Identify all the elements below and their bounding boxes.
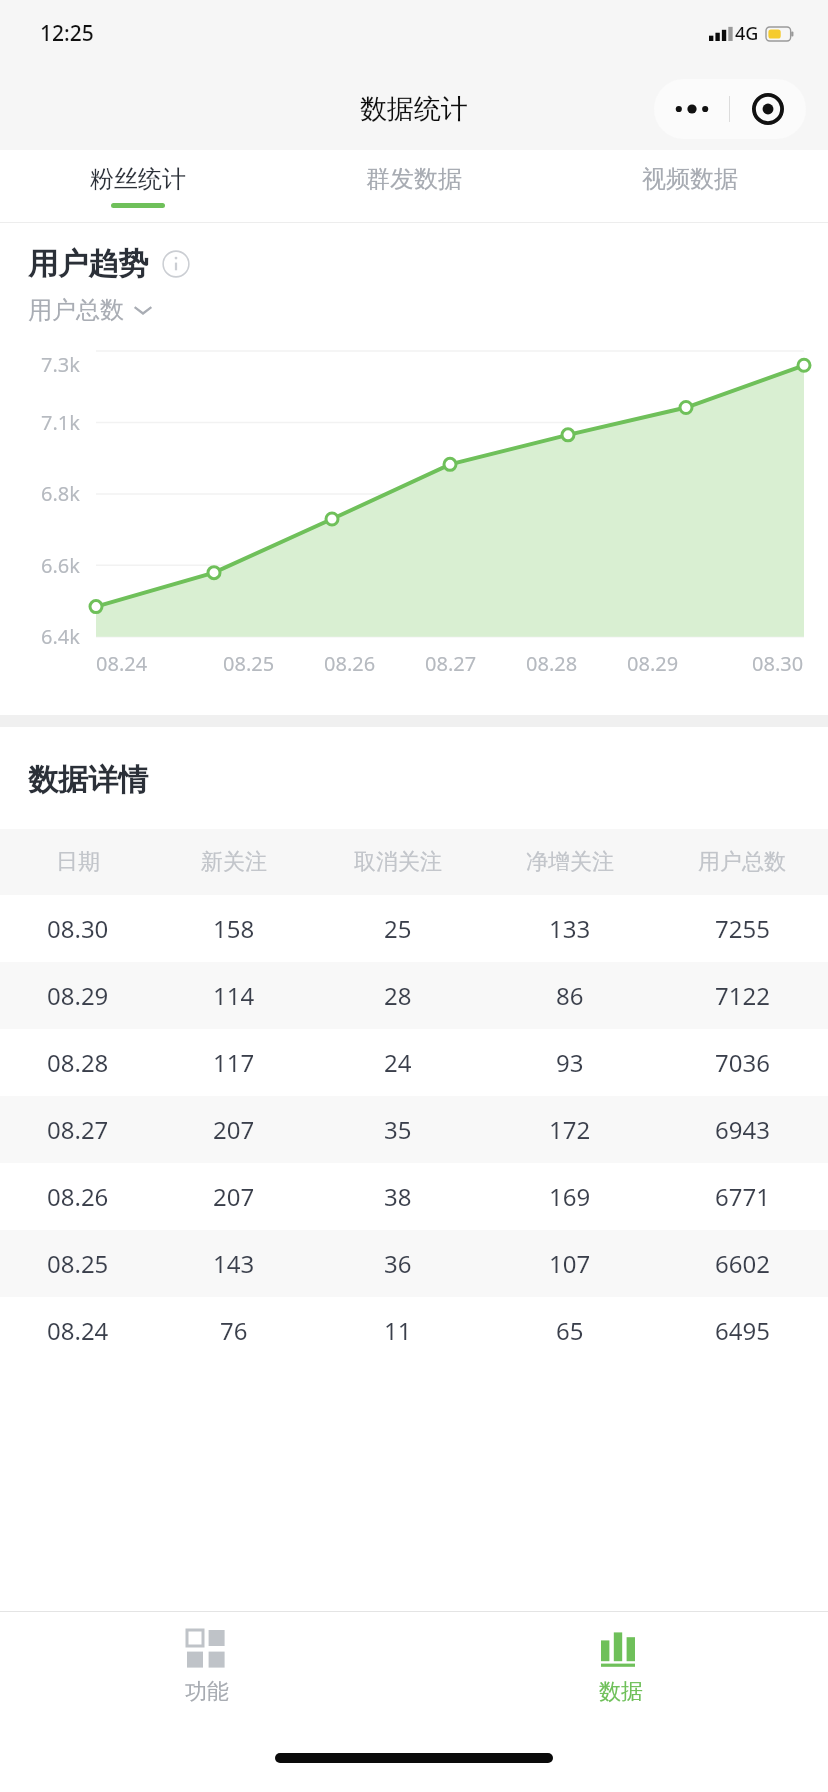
button[interactable]: More [654, 79, 729, 139]
staticText: 114 [213, 979, 255, 1012]
button[interactable]: 08.25 [0, 1230, 828, 1297]
staticText: 净增关注 [526, 848, 614, 876]
staticText: 158 [213, 912, 255, 945]
staticText: 7.3k [41, 351, 80, 378]
staticText: 08.27 [47, 1113, 109, 1146]
staticText: 143 [213, 1247, 255, 1280]
staticText: 取消关注 [354, 848, 442, 876]
staticText: 7.1k [41, 409, 80, 436]
staticText: 用户趋势 [28, 245, 148, 283]
button[interactable]: 08.30 [0, 895, 828, 962]
staticText: 207 [213, 1113, 255, 1146]
button[interactable]: 粉丝统计 [0, 150, 276, 222]
staticText: 08.25 [47, 1247, 109, 1280]
staticText: 08.24 [96, 650, 148, 677]
staticText: 08.30 [47, 912, 109, 945]
staticText: 86 [556, 979, 584, 1012]
staticText: 08.29 [627, 650, 679, 677]
staticText: 6.4k [41, 623, 80, 650]
staticText: 功能 [185, 1678, 229, 1706]
staticText: 25 [384, 912, 412, 945]
staticText: 日期 [56, 848, 100, 876]
staticText: 107 [549, 1247, 591, 1280]
staticText: 6.8k [41, 480, 80, 507]
staticText: 207 [213, 1180, 255, 1213]
button[interactable]: 用户总数 [28, 295, 154, 325]
staticText: 用户总数 [28, 295, 124, 325]
staticText: 08.26 [324, 650, 376, 677]
button[interactable]: 08.24 [0, 1297, 828, 1364]
staticText: 6495 [715, 1314, 770, 1347]
staticText: 6943 [715, 1113, 770, 1146]
button[interactable]: Info [162, 250, 190, 278]
staticText: 数据 [599, 1678, 643, 1706]
staticText: 24 [384, 1046, 412, 1079]
button[interactable]: 群发数据 [276, 150, 552, 222]
staticText: 6602 [715, 1247, 770, 1280]
staticText: 28 [384, 979, 412, 1012]
staticText: 38 [384, 1180, 412, 1213]
staticText: 93 [556, 1046, 584, 1079]
button[interactable]: 数据 [414, 1612, 828, 1724]
staticText: 35 [384, 1113, 412, 1146]
staticText: 6771 [715, 1180, 770, 1213]
staticText: 08.27 [425, 650, 477, 677]
staticText: 65 [556, 1314, 584, 1347]
button[interactable]: 视频数据 [552, 150, 828, 222]
staticText: 视频数据 [642, 164, 738, 194]
staticText: 36 [384, 1247, 412, 1280]
staticText: 08.30 [752, 650, 804, 677]
button[interactable]: 08.29 [0, 962, 828, 1029]
staticText: 新关注 [201, 848, 267, 876]
staticText: 133 [549, 912, 591, 945]
staticText: 11 [384, 1314, 412, 1347]
button[interactable]: 08.27 [0, 1096, 828, 1163]
staticText: 7122 [715, 979, 770, 1012]
staticText: 7255 [715, 912, 770, 945]
staticText: 08.29 [47, 979, 109, 1012]
staticText: 数据详情 [28, 761, 148, 799]
button[interactable]: 功能 [0, 1612, 414, 1724]
button[interactable]: Close [730, 79, 806, 139]
staticText: 08.28 [526, 650, 578, 677]
staticText: 169 [549, 1180, 591, 1213]
staticText: 7036 [715, 1046, 770, 1079]
button[interactable]: 08.28 [0, 1029, 828, 1096]
staticText: 数据统计 [360, 92, 468, 126]
staticText: 4G [735, 21, 759, 46]
staticText: 群发数据 [366, 164, 462, 194]
staticText: 117 [213, 1046, 255, 1079]
staticText: 08.26 [47, 1180, 109, 1213]
staticText: 08.25 [223, 650, 275, 677]
staticText: 08.28 [47, 1046, 109, 1079]
staticText: 08.24 [47, 1314, 109, 1347]
staticText: 6.6k [41, 552, 80, 579]
staticText: 12:25 [40, 19, 94, 48]
staticText: 172 [549, 1113, 591, 1146]
staticText: 用户总数 [698, 848, 786, 876]
button[interactable]: 08.26 [0, 1163, 828, 1230]
button[interactable]: More [654, 79, 806, 139]
staticText: 粉丝统计 [90, 164, 186, 194]
staticText: 76 [220, 1314, 248, 1347]
